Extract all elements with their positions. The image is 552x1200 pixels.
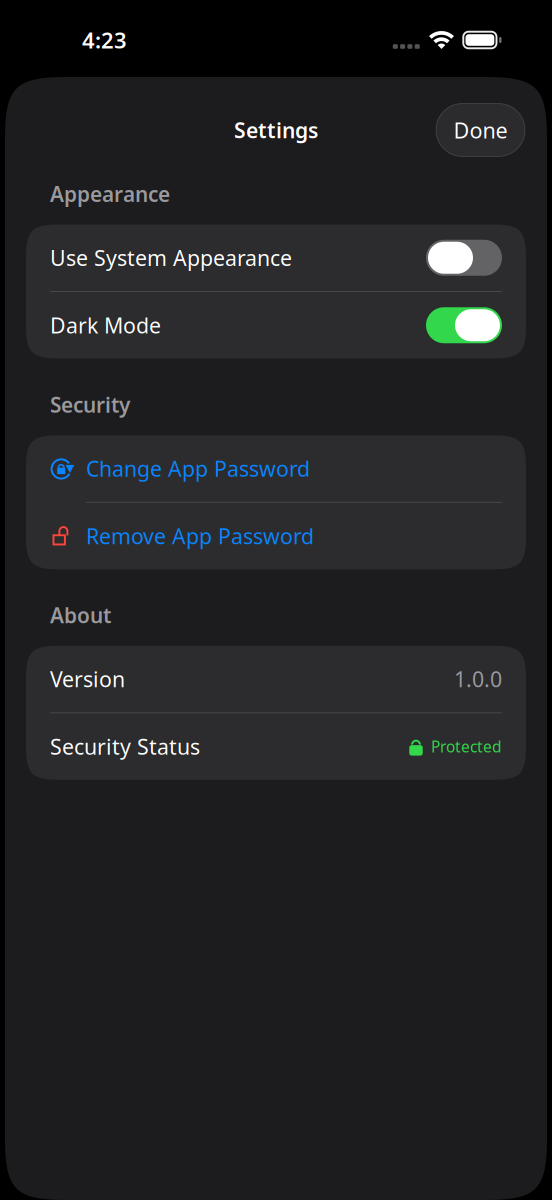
staticText: About bbox=[50, 601, 111, 629]
staticText: Done bbox=[453, 115, 507, 145]
staticText: Change App Password bbox=[86, 454, 310, 483]
staticText: Settings bbox=[234, 116, 318, 144]
button[interactable]: Done bbox=[436, 103, 525, 156]
staticText: Security bbox=[50, 391, 130, 419]
staticText: Security Status bbox=[50, 732, 200, 761]
button[interactable]: Remove App Password bbox=[26, 503, 526, 569]
staticText: Dark Mode bbox=[50, 311, 161, 340]
staticText: Protected bbox=[431, 736, 502, 757]
staticText: Remove App Password bbox=[86, 521, 314, 551]
button[interactable]: Change App Password bbox=[26, 435, 526, 502]
staticText: Version bbox=[50, 664, 125, 694]
staticText: Appearance bbox=[50, 180, 170, 208]
staticText: 1.0.0 bbox=[454, 664, 502, 694]
staticText: Use System Appearance bbox=[50, 243, 292, 272]
staticText: 4:23 bbox=[82, 25, 127, 55]
button[interactable]: Dark Mode bbox=[26, 292, 526, 358]
button[interactable]: Use System Appearance bbox=[26, 224, 526, 291]
